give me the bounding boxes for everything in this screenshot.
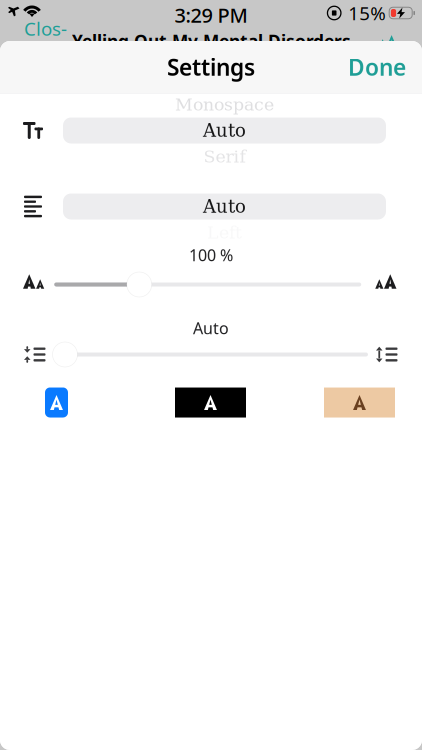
button[interactable]: Slider (54, 271, 361, 297)
staticText: 100 % (189, 244, 233, 266)
button[interactable]: Monospace (63, 93, 386, 167)
staticText: Auto (193, 317, 229, 339)
staticText: Auto (203, 120, 246, 141)
staticText: Auto (203, 196, 246, 217)
button[interactable]: Slider (65, 341, 368, 367)
staticText: Done (348, 52, 406, 82)
button[interactable]: Close (24, 31, 68, 51)
staticText: 15% (348, 1, 386, 25)
button[interactable] (63, 169, 386, 243)
button[interactable]: Theme (175, 387, 246, 417)
staticText: Yelling Out My Mental Disorders (72, 29, 351, 52)
button[interactable]: Theme (45, 387, 68, 417)
button[interactable]: Text size (376, 31, 400, 51)
button[interactable]: Theme (324, 387, 395, 417)
staticText: 3:29 PM (174, 2, 247, 28)
staticText: Monospace (175, 94, 274, 115)
button[interactable]: Done (332, 42, 422, 92)
staticText: Settings (167, 52, 255, 82)
staticText: Close (24, 16, 67, 66)
staticText: Serif (203, 146, 245, 167)
